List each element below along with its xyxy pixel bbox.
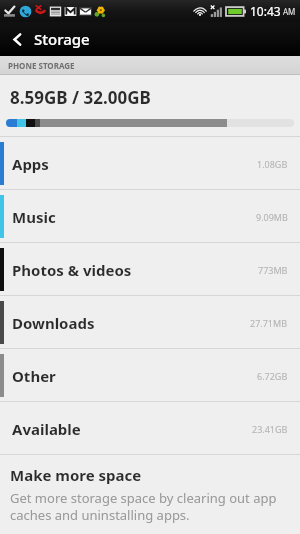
staticText: Photos & videos	[12, 260, 132, 280]
button[interactable]: Downloads	[0, 296, 300, 349]
staticText: 23.41GB	[252, 423, 288, 435]
staticText: 8.59GB / 32.00GB	[10, 86, 151, 109]
staticText: 6.72GB	[257, 370, 288, 382]
staticText: 9.09MB	[256, 211, 288, 223]
button[interactable]: Music	[0, 190, 300, 243]
staticText: Apps	[12, 154, 49, 174]
staticText: 10:43	[250, 3, 281, 19]
staticText: Music	[12, 207, 56, 227]
staticText: AM	[283, 6, 296, 17]
button[interactable]: Other	[0, 349, 300, 402]
button[interactable]: Available	[0, 402, 300, 455]
button[interactable]: Apps	[0, 137, 300, 190]
staticText: Get more storage space by clearing out a…	[10, 489, 290, 524]
staticText: 773MB	[258, 264, 288, 276]
staticText: PHONE STORAGE	[8, 60, 75, 71]
staticText: Available	[12, 419, 81, 439]
staticText: 1.08GB	[257, 158, 288, 170]
button[interactable]: Make more space	[0, 455, 300, 524]
staticText: Make more space	[10, 465, 142, 485]
button[interactable]: Photos & videos	[0, 243, 300, 296]
button[interactable]: Back	[0, 22, 34, 56]
staticText: Other	[12, 366, 56, 386]
staticText: Storage	[34, 29, 90, 49]
staticText: 27.71MB	[250, 317, 288, 329]
staticText: Downloads	[12, 313, 95, 333]
